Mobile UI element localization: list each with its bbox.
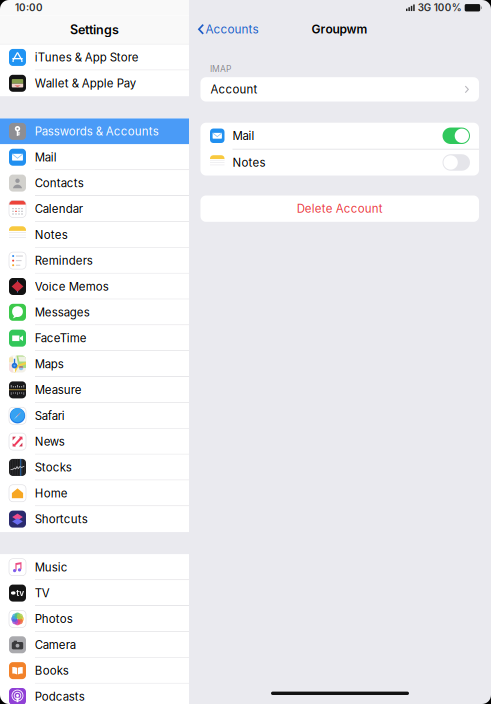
button[interactable]: Books (0, 658, 189, 684)
button[interactable]: Stocks (0, 454, 189, 480)
staticText: 10:00 (15, 2, 43, 14)
staticText: Account (210, 82, 257, 96)
staticText: Reminders (35, 254, 93, 268)
staticText: IMAP (210, 64, 231, 74)
staticText: TV (35, 586, 50, 600)
button[interactable]: News (0, 429, 189, 455)
staticText: Calendar (35, 202, 83, 216)
staticText: Voice Memos (35, 279, 109, 293)
staticText: Books (35, 664, 69, 678)
button[interactable]: Wallet & Apple Pay (0, 70, 189, 96)
button[interactable]: Notes (0, 222, 189, 248)
button[interactable]: Voice Memos (0, 273, 189, 299)
button[interactable]: Contacts (0, 170, 189, 196)
staticText: Maps (35, 357, 64, 371)
staticText: News (35, 435, 65, 448)
staticText: FaceTime (35, 331, 87, 345)
staticText: Music (35, 560, 68, 574)
button[interactable]: Home (0, 480, 189, 506)
button[interactable]: iTunes & App Store (0, 44, 189, 70)
button[interactable]: Messages (0, 299, 189, 325)
staticText: Settings (70, 22, 119, 37)
button[interactable]: Mail (0, 144, 189, 170)
staticText: Safari (35, 409, 65, 423)
button[interactable]: Maps (0, 351, 189, 377)
staticText: Podcasts (35, 689, 85, 703)
button[interactable]: Photos (0, 606, 189, 632)
staticText: Notes (35, 228, 68, 242)
button[interactable]: Safari (0, 403, 189, 429)
button[interactable]: Notes (200, 149, 479, 175)
staticText: Shortcuts (35, 512, 88, 526)
button[interactable]: Shortcuts (0, 506, 189, 532)
staticText: Contacts (35, 176, 84, 190)
button[interactable]: Calendar (0, 196, 189, 222)
staticText: Delete Account (297, 202, 383, 216)
button[interactable]: Reminders (0, 248, 189, 274)
staticText: Photos (35, 612, 73, 626)
button[interactable]: Passwords & Accounts (0, 118, 189, 144)
button[interactable]: Music (0, 554, 189, 580)
staticText: Groupwm (311, 22, 367, 36)
staticText: Accounts (205, 22, 258, 36)
button[interactable]: Mail (200, 123, 479, 149)
button[interactable]: Account (200, 77, 479, 101)
staticText: Stocks (35, 460, 72, 474)
staticText: Home (35, 486, 68, 500)
button[interactable]: Podcasts (0, 684, 189, 704)
button[interactable]: Accounts (189, 15, 264, 43)
staticText: 3G (418, 2, 431, 14)
staticText: Measure (35, 383, 82, 397)
staticText: Notes (232, 155, 265, 169)
staticText: Messages (35, 305, 90, 319)
button[interactable]: Camera (0, 632, 189, 658)
button[interactable]: FaceTime (0, 325, 189, 351)
button[interactable]: tv (0, 580, 189, 606)
staticText: 100% (434, 2, 462, 14)
staticText: Camera (35, 638, 76, 652)
button[interactable]: Measure (0, 377, 189, 403)
staticText: tv (16, 588, 24, 598)
button[interactable]: Delete Account (200, 195, 479, 222)
staticText: Passwords & Accounts (35, 124, 159, 138)
staticText: iTunes & App Store (35, 50, 139, 64)
staticText: Mail (232, 129, 254, 143)
staticText: Mail (35, 150, 57, 164)
staticText: Wallet & Apple Pay (35, 76, 136, 90)
